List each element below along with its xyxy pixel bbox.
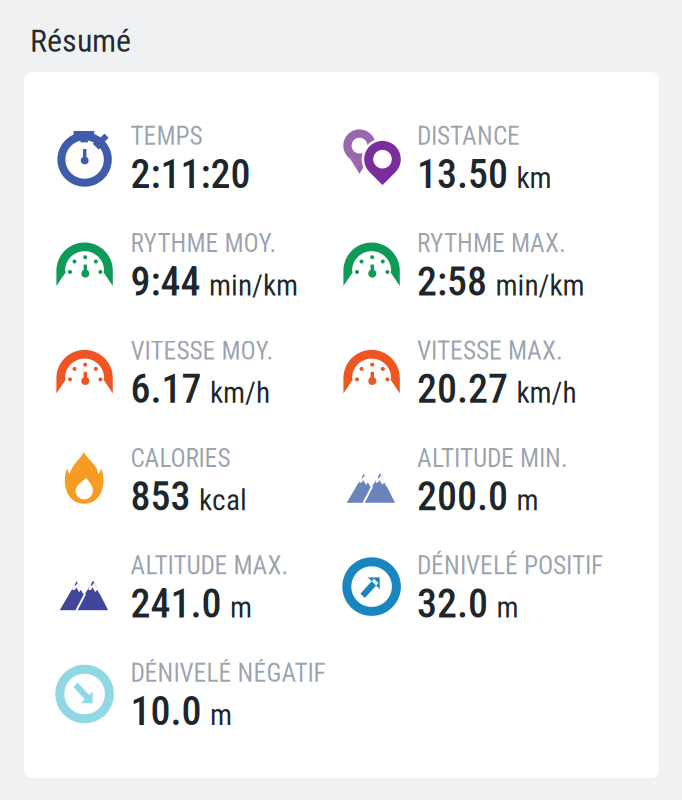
staticText: 200.0 (417, 473, 508, 520)
staticText: 2:11:20 (131, 151, 251, 198)
staticText: 20.27 (417, 366, 508, 413)
button[interactable]: RYTHME MOY. (131, 229, 298, 305)
button[interactable]: VITESSE MAX. (417, 336, 576, 413)
staticText: 13.50 (417, 151, 508, 198)
staticText: DISTANCE (417, 121, 520, 151)
staticText: min/km (209, 268, 298, 303)
staticText: 853 (131, 473, 191, 520)
staticText: CALORIES (131, 443, 231, 473)
staticText: TEMPS (131, 121, 203, 151)
staticText: 9:44 (131, 258, 201, 305)
button[interactable]: CALORIES (131, 443, 247, 520)
button[interactable]: RYTHME MAX. (417, 229, 584, 305)
staticText: 241.0 (131, 580, 222, 627)
staticText: RYTHME MOY. (131, 229, 277, 258)
staticText: m (516, 483, 538, 517)
staticText: VITESSE MAX. (417, 336, 563, 366)
staticText: 32.0 (417, 580, 488, 627)
staticText: kcal (199, 483, 247, 517)
staticText: km/h (516, 376, 576, 410)
staticText: DÉNIVELÉ POSITIF (417, 551, 603, 580)
staticText: m (210, 698, 232, 732)
staticText: 10.0 (131, 688, 202, 735)
button[interactable]: ALTITUDE MIN. (417, 443, 568, 520)
staticText: m (230, 590, 252, 625)
staticText: Résumé (30, 22, 131, 59)
staticText: ALTITUDE MIN. (417, 443, 568, 473)
button[interactable]: DISTANCE (417, 121, 551, 198)
button[interactable]: ALTITUDE MAX. (131, 551, 289, 627)
staticText: km/h (210, 376, 270, 410)
staticText: RYTHME MAX. (417, 229, 566, 258)
staticText: VITESSE MOY. (131, 336, 274, 366)
staticText: min/km (495, 268, 584, 303)
staticText: km (516, 161, 551, 195)
staticText: m (496, 590, 518, 625)
button[interactable]: DÉNIVELÉ NÉGATIF (131, 658, 326, 735)
staticText: DÉNIVELÉ NÉGATIF (131, 658, 326, 688)
button[interactable]: DÉNIVELÉ POSITIF (417, 551, 603, 627)
button[interactable]: TEMPS (131, 121, 251, 198)
button[interactable]: VITESSE MOY. (131, 336, 274, 413)
staticText: 6.17 (131, 366, 202, 413)
staticText: 2:58 (417, 258, 487, 305)
staticText: ALTITUDE MAX. (131, 551, 289, 580)
